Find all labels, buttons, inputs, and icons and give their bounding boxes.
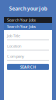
staticText: Job Title [7,33,20,38]
staticText: Search your job [9,5,47,12]
staticText: Company [7,54,24,59]
staticText: Search Your Jobs [7,17,36,23]
staticText: Location [7,43,21,49]
staticText: Search Your Jobs [7,24,36,29]
staticText: SEARCH [20,64,36,70]
button[interactable]: SEARCH [7,64,49,70]
